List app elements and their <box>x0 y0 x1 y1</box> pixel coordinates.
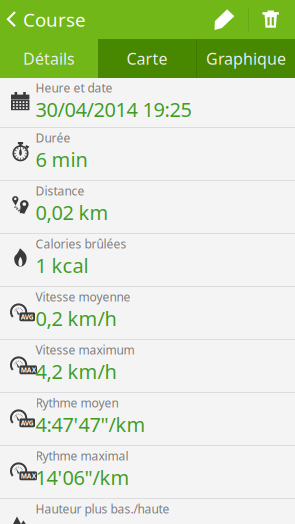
staticText: 4,2 km/h <box>35 358 116 384</box>
button[interactable]: Edit <box>202 0 248 39</box>
staticText: 0,2 km/h <box>35 305 116 331</box>
staticText: Vitesse maximum <box>35 342 134 358</box>
staticText: MAX <box>21 365 36 374</box>
staticText: Carte <box>126 48 167 69</box>
button[interactable]: Hauteur plus bas./haute <box>0 499 295 524</box>
staticText: AVG <box>21 312 34 321</box>
button[interactable]: AVG <box>0 393 295 446</box>
button[interactable]: Heure et date <box>0 78 295 128</box>
button[interactable]: Delete <box>249 0 293 39</box>
staticText: Rythme moyen <box>35 395 118 411</box>
button[interactable]: Durée <box>0 128 295 181</box>
button[interactable]: MAX <box>0 340 295 393</box>
button[interactable]: AVG <box>0 287 295 340</box>
button[interactable]: Graphique <box>197 39 295 78</box>
staticText: AVG <box>21 418 34 427</box>
staticText: Calories brûlées <box>35 236 126 252</box>
staticText: 0,02 km <box>35 199 108 225</box>
staticText: 4:47'47"/km <box>35 411 145 437</box>
staticText: Heure et date <box>35 80 112 96</box>
staticText: Durée <box>35 130 70 146</box>
button[interactable]: MAX <box>0 446 295 499</box>
staticText: Course <box>23 7 86 32</box>
button[interactable]: Course <box>0 0 96 39</box>
staticText: Graphique <box>206 48 286 69</box>
staticText: Distance <box>35 183 84 199</box>
staticText: Détails <box>23 48 75 69</box>
staticText: Rythme maximal <box>35 448 128 464</box>
staticText: 30/04/2014 19:25 <box>35 96 191 122</box>
staticText: Vitesse moyenne <box>35 289 130 305</box>
staticText: 6 min <box>35 146 87 172</box>
staticText: MAX <box>21 471 36 480</box>
button[interactable]: Carte <box>98 39 196 78</box>
staticText: 14'06"/km <box>35 464 129 490</box>
button[interactable]: Calories brûlées <box>0 234 295 287</box>
button[interactable]: Détails <box>0 39 98 78</box>
staticText: Hauteur plus bas./haute <box>35 501 169 517</box>
button[interactable]: Distance <box>0 181 295 234</box>
staticText: 1 kcal <box>35 252 88 278</box>
